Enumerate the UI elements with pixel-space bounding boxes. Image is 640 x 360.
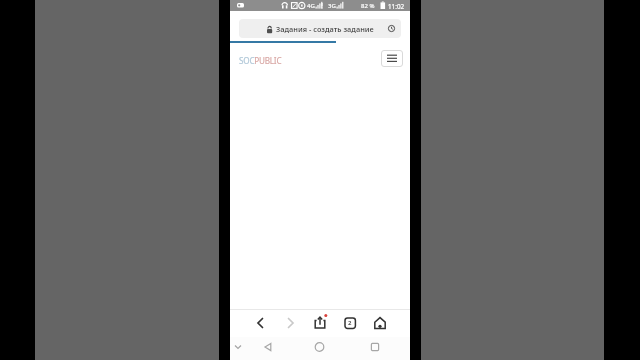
button[interactable]: Задания - создать задание (239, 19, 401, 38)
staticText: Задания - создать задание (276, 24, 374, 34)
button[interactable] (367, 339, 383, 355)
staticText: 82 % (361, 2, 375, 10)
button[interactable] (311, 312, 329, 332)
button[interactable] (231, 340, 245, 354)
button[interactable]: SOCPUBLIC (239, 55, 282, 66)
button[interactable] (381, 50, 403, 67)
staticText: 4G (307, 2, 315, 10)
staticText: 2 (348, 319, 352, 327)
button[interactable] (311, 339, 328, 355)
button[interactable]: 2 (341, 314, 359, 332)
button[interactable] (251, 314, 269, 332)
staticText: 3G (328, 2, 336, 10)
staticText: 11:02 (388, 2, 405, 11)
button[interactable] (282, 314, 300, 332)
button[interactable] (371, 314, 389, 332)
button[interactable] (260, 339, 276, 355)
